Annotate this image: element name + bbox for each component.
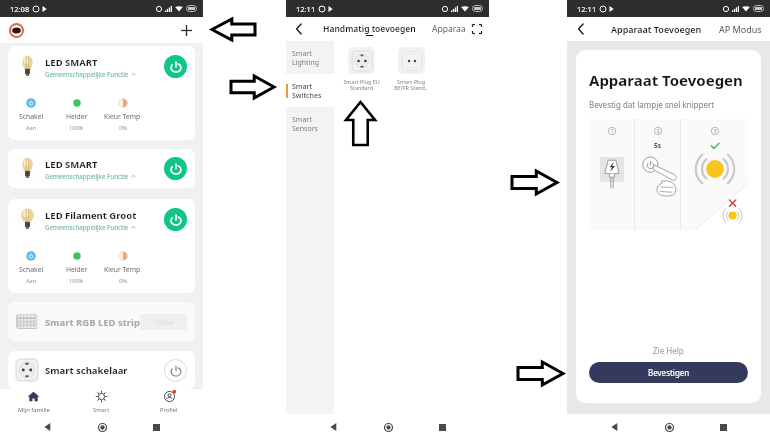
staticText: Smart Plug EU Standard: [343, 78, 380, 92]
staticText: Mijn familie: [18, 406, 50, 414]
button[interactable]: Back: [606, 419, 622, 435]
button[interactable]: Power toggle: [164, 208, 187, 231]
button[interactable]: Bevestigen: [589, 362, 748, 383]
staticText: Apparaat Toevoegen: [611, 23, 702, 35]
staticText: 0%: [119, 124, 127, 132]
button[interactable]: Smart Lighting: [286, 41, 334, 74]
button[interactable]: Home: [380, 419, 396, 435]
button[interactable]: LED SMART: [8, 46, 195, 140]
staticText: LED Filament Groot: [45, 209, 137, 222]
staticText: 12:11: [296, 4, 316, 14]
button[interactable]: Recent apps: [715, 419, 731, 435]
button[interactable]: Power toggle: [164, 55, 187, 78]
staticText: 12:11: [577, 4, 597, 14]
staticText: 3: [714, 128, 717, 134]
button[interactable]: Profiel: [135, 389, 203, 414]
button[interactable]: Smart: [67, 389, 135, 414]
staticText: Apparaa: [432, 23, 466, 35]
button[interactable]: Kleur Temp: [99, 98, 146, 132]
button[interactable]: Power toggle: [164, 157, 187, 180]
button[interactable]: LED Filament Groot: [8, 199, 195, 293]
staticText: Gemeenschappelijke Functie: [45, 172, 129, 180]
button[interactable]: Kleur Temp: [99, 251, 146, 285]
button[interactable]: Home: [94, 419, 110, 435]
staticText: 100%: [69, 124, 84, 132]
staticText: Schakel: [19, 112, 44, 121]
button[interactable]: Smart RGB LED strip: [8, 302, 195, 341]
button[interactable]: Helder: [54, 98, 99, 132]
button[interactable]: Mijn familie: [0, 389, 67, 414]
staticText: 0%: [119, 277, 127, 285]
staticText: 2: [657, 128, 660, 134]
button[interactable]: Smart Switches: [286, 74, 334, 107]
staticText: Smart: [93, 406, 110, 414]
button[interactable]: Power toggle: [164, 359, 187, 382]
button[interactable]: Helder: [54, 251, 99, 285]
staticText: Aan: [26, 277, 37, 285]
button[interactable]: Scan QR code: [470, 22, 484, 36]
staticText: Schakel: [19, 265, 44, 274]
button[interactable]: Zie Help: [653, 345, 684, 356]
staticText: Handmatig toevoegen: [323, 23, 416, 35]
button[interactable]: Back: [573, 21, 589, 37]
staticText: Gemeenschappelijke Functie: [45, 70, 129, 78]
staticText: Bevestig dat lampje snel knippert: [589, 99, 715, 110]
button[interactable]: Back: [325, 419, 341, 435]
staticText: 5s: [654, 141, 661, 150]
staticText: Smart Sensors: [292, 115, 318, 133]
button[interactable]: Smart Sensors: [286, 107, 334, 140]
staticText: AP Modus: [719, 23, 762, 35]
staticText: Apparaat Toevoegen: [589, 70, 743, 90]
button[interactable]: Back: [291, 21, 307, 37]
button[interactable]: LED SMART: [8, 149, 195, 188]
button[interactable]: Recent apps: [434, 419, 450, 435]
staticText: Smart Plug BE/FR Stand..: [394, 78, 428, 92]
staticText: Smart RGB LED strip: [45, 316, 140, 329]
button[interactable]: Recent apps: [148, 419, 164, 435]
staticText: Smart schakelaar: [45, 364, 128, 377]
button[interactable]: Back: [39, 419, 55, 435]
staticText: Gemeenschappelijke Functie: [45, 223, 129, 231]
button[interactable]: Smart Plug BE/FR Stand..: [386, 47, 436, 92]
staticText: Kleur Temp: [104, 265, 141, 274]
staticText: Profiel: [160, 406, 178, 414]
staticText: Aan: [26, 124, 37, 132]
staticText: Helder: [66, 265, 88, 274]
button[interactable]: Schakel: [8, 98, 54, 132]
staticText: 1: [611, 128, 614, 134]
staticText: Smart Lighting: [292, 49, 320, 67]
button[interactable]: Add device: [178, 22, 195, 39]
staticText: 100%: [69, 277, 84, 285]
button[interactable]: Smart Plug EU Standard: [336, 47, 386, 92]
staticText: Smart Switches: [292, 82, 322, 100]
button[interactable]: Home: [661, 419, 677, 435]
button[interactable]: Smart schakelaar: [8, 351, 195, 389]
staticText: Bevestigen: [648, 367, 690, 378]
staticText: LED SMART: [45, 158, 98, 171]
staticText: 12:08: [10, 4, 30, 14]
staticText: Offline: [153, 318, 174, 327]
button[interactable]: Schakel: [8, 251, 54, 285]
staticText: Kleur Temp: [104, 112, 141, 121]
staticText: LED SMART: [45, 56, 98, 69]
button[interactable]: Account: [8, 22, 25, 39]
staticText: Helder: [66, 112, 88, 121]
